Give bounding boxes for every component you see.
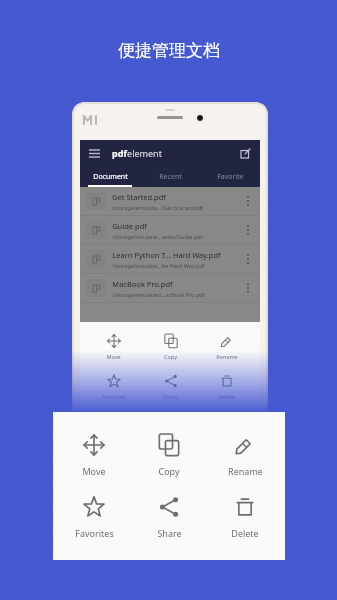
button[interactable]: Delete [210, 496, 280, 539]
staticText: Favorites [102, 393, 126, 400]
button[interactable]: Share [148, 374, 193, 400]
staticText: element [127, 147, 162, 159]
staticText: Move [82, 465, 106, 477]
staticText: Rename [228, 465, 263, 477]
staticText: Recent [159, 172, 182, 182]
button[interactable]: Move [59, 434, 129, 477]
button[interactable]: Rename [204, 334, 249, 360]
staticText: Get Started.pdf [112, 192, 166, 202]
staticText: Share [157, 527, 182, 539]
button[interactable]: Favorite [200, 172, 260, 182]
button[interactable]: Guide.pdf [80, 216, 260, 244]
button[interactable]: Edit [238, 146, 252, 160]
staticText: /storage/emulate...he Hard Way.pdf [112, 262, 205, 269]
button[interactable]: Recent [140, 172, 200, 182]
staticText: MacBook Pro.pdf [112, 279, 173, 289]
staticText: /storage/emulate.../Get Started.pdf [112, 204, 203, 211]
staticText: Move [106, 353, 121, 360]
button[interactable]: Rename [210, 434, 280, 477]
staticText: Favorites [75, 527, 114, 539]
button[interactable]: Share [134, 496, 204, 539]
staticText: Rename [216, 353, 238, 360]
button[interactable]: Copy [134, 434, 204, 477]
staticText: /storage/emulate...ovies/Guide.pdf [112, 233, 203, 240]
button[interactable]: Learn Python T... Hard Way.pdf [80, 245, 260, 273]
button[interactable]: More options [240, 251, 256, 267]
staticText: /storage/emulated...acBook Pro.pdf [112, 291, 205, 298]
button[interactable]: Copy [148, 334, 193, 360]
staticText: pdf [112, 147, 127, 159]
button[interactable]: More options [240, 222, 256, 238]
button[interactable]: Move [91, 334, 136, 360]
staticText: Learn Python T... Hard Way.pdf [112, 250, 221, 260]
button[interactable]: More options [240, 193, 256, 209]
button[interactable]: Favorites [91, 374, 136, 400]
staticText: Copy [164, 353, 177, 360]
staticText: Guide.pdf [112, 221, 147, 231]
staticText: Document [93, 172, 128, 182]
button[interactable]: Get Started.pdf [80, 187, 260, 215]
button[interactable]: MacBook Pro.pdf [80, 274, 260, 302]
button[interactable]: Menu [87, 146, 101, 160]
button[interactable]: Favorites [59, 496, 129, 539]
staticText: Delete [218, 393, 235, 400]
staticText: Share [163, 393, 178, 400]
button[interactable]: Delete [204, 374, 249, 400]
staticText: Favorite [217, 172, 244, 182]
button[interactable]: Document [80, 172, 140, 182]
staticText: Delete [231, 527, 259, 539]
staticText: 便捷管理文档 [118, 40, 220, 61]
button[interactable]: More options [240, 280, 256, 296]
staticText: Copy [158, 465, 180, 477]
